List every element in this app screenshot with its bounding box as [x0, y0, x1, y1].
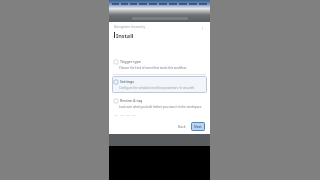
staticText: Back — [178, 124, 186, 129]
button[interactable]: Next — [191, 122, 205, 131]
staticText: Look over what you built before you save… — [119, 105, 202, 109]
staticText: Next — [194, 124, 202, 129]
staticText: Configure the schedule and the parameter… — [119, 86, 195, 90]
staticText: Trigger type — [120, 59, 141, 64]
staticText: Review & tag — [120, 98, 143, 103]
button[interactable]: Settings — [112, 76, 207, 93]
staticText: Install — [116, 32, 134, 39]
button[interactable]: Back — [176, 123, 188, 130]
staticText: Navigation hierarchy — [114, 25, 199, 29]
button[interactable]: Review & tag — [112, 95, 207, 112]
button[interactable]: More options — [199, 25, 205, 31]
staticText: Settings — [120, 79, 134, 84]
staticText: Choose the kind of event that starts thi… — [119, 66, 187, 70]
button[interactable]: Trigger type — [112, 56, 207, 73]
